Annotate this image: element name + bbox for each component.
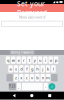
button[interactable]: y [32,56,37,64]
button[interactable]: p [54,56,58,64]
staticText: d [20,66,22,71]
button[interactable]: m [46,74,50,81]
button[interactable]: u [38,56,42,64]
button[interactable]: , [17,83,21,90]
staticText: i [45,57,46,63]
staticText: , [18,84,19,89]
staticText: w [12,57,15,63]
staticText: z [15,75,17,80]
staticText: j [42,66,43,71]
button[interactable]: t [27,56,32,64]
button[interactable]: j [40,65,45,73]
button[interactable]: Strong Password [10,50,35,55]
button[interactable] [51,74,58,81]
staticText: l [53,66,54,71]
button[interactable] [6,74,13,81]
button[interactable]: ?123 [9,83,16,90]
button[interactable]: x [19,74,23,81]
staticText: b [36,75,38,80]
staticText: Set your Password [17,0,47,17]
button[interactable]: q [6,56,10,64]
button[interactable]: f [24,65,29,73]
staticText: a [10,66,12,71]
button[interactable]: b [35,74,40,81]
staticText: q [7,57,9,63]
button[interactable]: . [44,83,48,90]
staticText: u [39,57,41,63]
staticText: ✓ [50,84,53,89]
staticText: p [55,57,57,63]
button[interactable]: n [40,74,45,81]
button[interactable]: r [22,56,26,64]
button[interactable]: i [43,56,48,64]
staticText: e [18,57,20,63]
staticText: o [50,57,52,63]
button[interactable]: c [24,74,29,81]
button[interactable]: g [30,65,34,73]
button[interactable]: Home [28,92,35,99]
button[interactable] [1,21,63,27]
button[interactable]: Recents [46,92,53,99]
button[interactable]: l [51,65,56,73]
button[interactable]: o [48,56,53,64]
button[interactable]: h [35,65,40,73]
staticText: c [26,75,28,80]
staticText: Strong Password [11,51,33,54]
staticText: y [34,57,36,63]
button[interactable]: Done [49,83,55,90]
staticText: New password [19,14,45,19]
button[interactable] [22,83,43,90]
staticText: s [15,66,17,71]
staticText: ?123 [9,85,16,88]
staticText: g [31,66,33,71]
staticText: f [26,66,27,71]
staticText: m [46,75,50,80]
staticText: v [31,75,33,80]
staticText: h [36,66,38,71]
staticText: n [42,75,44,80]
button[interactable]: w [11,56,15,64]
staticText: t [29,57,30,63]
button[interactable]: v [30,74,34,81]
staticText: k [47,66,49,71]
button[interactable]: k [46,65,50,73]
button[interactable]: a [8,65,13,73]
button[interactable]: z [14,74,18,81]
staticText: . [45,84,46,89]
button[interactable]: Back [11,92,17,99]
staticText: r [23,57,25,63]
button[interactable]: s [14,65,18,73]
button[interactable]: e [16,56,21,64]
staticText: x [20,75,22,80]
button[interactable]: d [19,65,24,73]
